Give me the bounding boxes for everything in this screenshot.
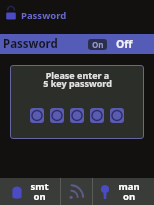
button[interactable]: man on [93, 178, 154, 205]
button[interactable]: Key slot [50, 108, 64, 123]
staticText: man on [118, 180, 140, 203]
button[interactable]: Key slot [30, 108, 44, 123]
staticText: On [92, 39, 104, 50]
staticText: Off [116, 37, 133, 51]
staticText: smt on [30, 180, 49, 203]
staticText: Please enter a 5 key password [43, 69, 112, 89]
button[interactable]: Key slot [70, 108, 84, 123]
button[interactable]: Off [116, 37, 133, 51]
button[interactable]: Key slot [90, 108, 104, 123]
staticText: Password [21, 9, 67, 22]
button[interactable]: On [88, 39, 107, 50]
button[interactable]: Signal [61, 178, 92, 205]
button[interactable]: Key slot [110, 108, 124, 123]
button[interactable]: smt on [0, 178, 60, 205]
staticText: Password [3, 36, 58, 52]
